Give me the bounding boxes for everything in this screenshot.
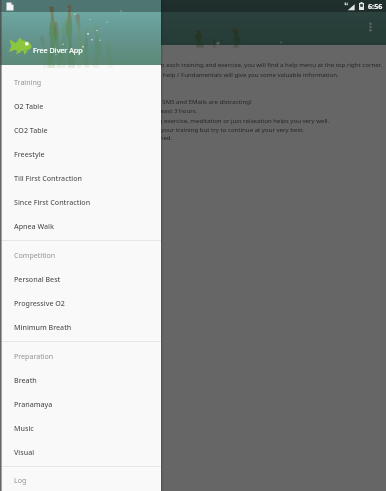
button[interactable]: Competition: [0, 243, 161, 267]
button[interactable]: CO2 Table: [0, 118, 161, 142]
staticText: CO2 Table: [14, 125, 48, 135]
other: Notification: [6, 2, 14, 11]
button[interactable]: More options: [363, 19, 378, 34]
staticText: Personal Best: [14, 274, 61, 284]
staticText: Breath: [14, 375, 37, 385]
staticText: Till First Contraction: [14, 173, 83, 183]
staticText: Don't eat at least 3 hours.: [124, 106, 198, 114]
button[interactable]: Progressive O2: [0, 291, 161, 315]
staticText: Minimum Breath: [14, 322, 72, 332]
button[interactable]: Log: [0, 469, 161, 491]
button[interactable]: Pranamaya: [0, 392, 161, 416]
button[interactable]: Minimum Breath: [0, 315, 161, 339]
staticText: Pranamaya: [14, 399, 53, 409]
staticText: Progressive O2: [14, 298, 65, 308]
staticText: Visual: [14, 447, 35, 457]
button[interactable]: Music: [0, 416, 161, 440]
staticText: Freestyle: [14, 149, 45, 159]
staticText: Be relaxed, SMS and EMails are distracti…: [129, 97, 252, 105]
staticText: Log: [14, 475, 27, 485]
staticText: Competition: [14, 250, 56, 260]
button[interactable]: Personal Best: [0, 267, 161, 291]
staticText: There help / Fundamentals will give you …: [145, 70, 339, 78]
staticText: 6:56: [368, 1, 383, 11]
staticText: Since First Contraction: [14, 197, 91, 207]
staticText: O2 Table: [14, 101, 44, 111]
staticText: Preparation: [14, 351, 54, 361]
staticText: Apnea Walk: [14, 221, 54, 231]
button[interactable]: Visual: [0, 440, 161, 464]
button[interactable]: O2 Table: [0, 94, 161, 118]
staticText: Music: [14, 423, 34, 433]
staticText: Free Diver App: [33, 45, 83, 55]
staticText: A light warming exercise, meditation or …: [117, 116, 330, 124]
button[interactable]: Breath: [0, 368, 161, 392]
staticText: Within each training and exercise, you w…: [146, 60, 382, 68]
button[interactable]: Preparation: [0, 344, 161, 368]
button[interactable]: Freestyle: [0, 142, 161, 166]
button[interactable]: Till First Contraction: [0, 166, 161, 190]
staticText: Training: [14, 77, 42, 87]
button[interactable]: Apnea Walk: [0, 214, 161, 238]
staticText: Be disciplined.: [131, 133, 173, 141]
staticText: Never overdo your training but try to co…: [121, 125, 305, 133]
button[interactable]: Training: [0, 70, 161, 94]
button[interactable]: Since First Contraction: [0, 190, 161, 214]
